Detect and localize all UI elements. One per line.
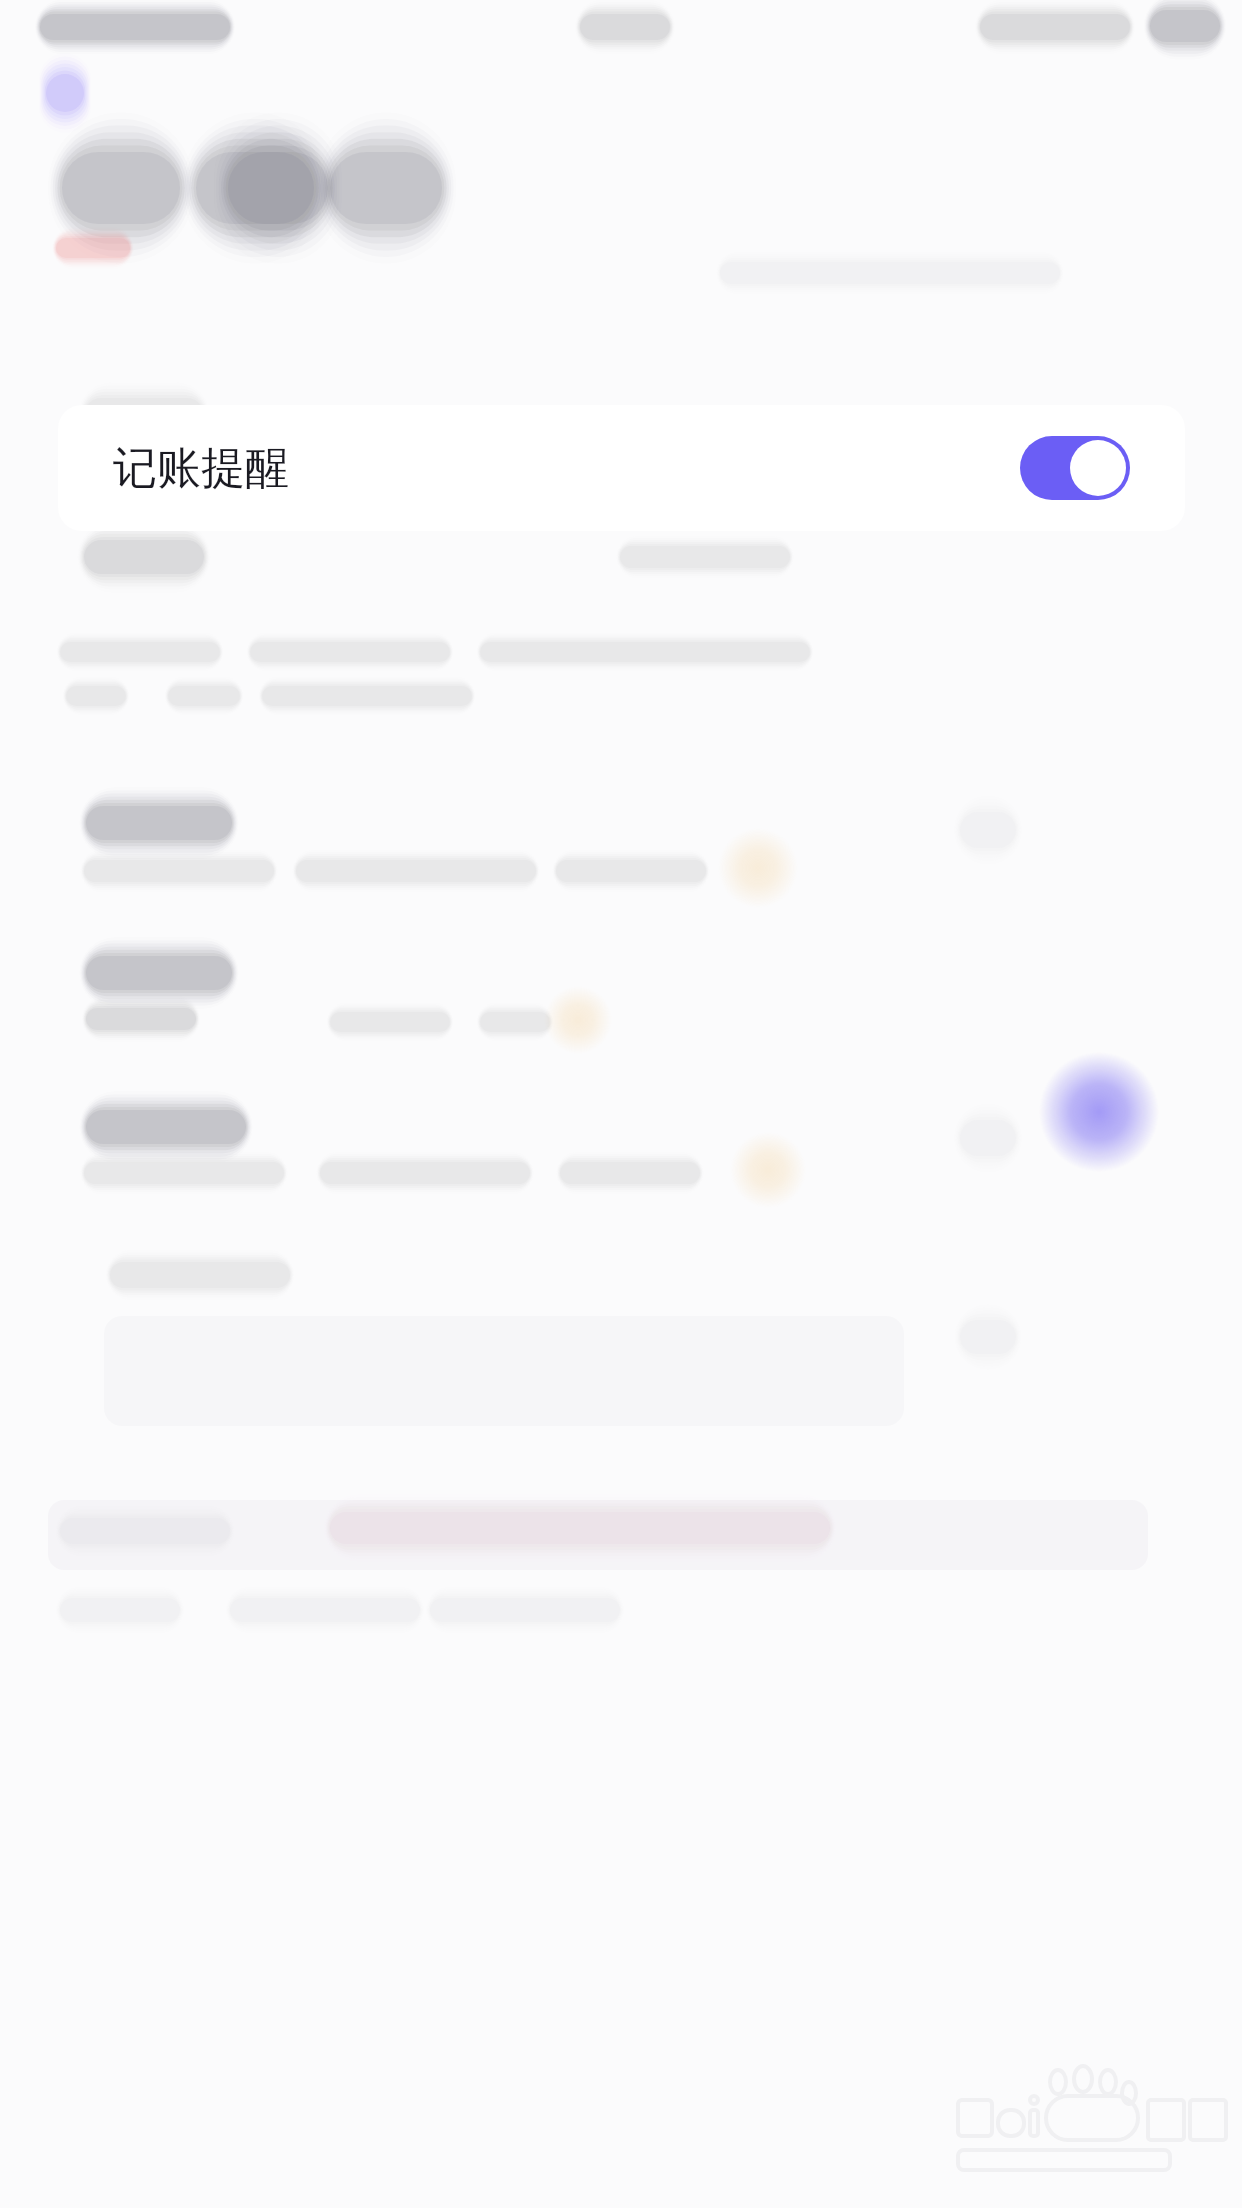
button[interactable]: 记账提醒开关 (1020, 436, 1130, 500)
button[interactable]: 记账提醒 (58, 405, 1185, 531)
staticText: 记账提醒 (113, 441, 289, 496)
